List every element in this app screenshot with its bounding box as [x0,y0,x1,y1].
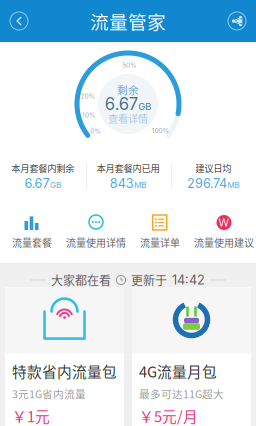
staticText: 296.74 [187,176,227,191]
staticText: ￥1元 [12,405,50,426]
staticText: 流量管家 [90,7,166,34]
staticText: 843 [110,176,134,191]
staticText: 本月套餐内剩余 [11,161,74,175]
staticText: 查看详情 [108,111,148,126]
button[interactable]: 4G流量月包 [132,287,251,426]
staticText: 最多可达11G超大 [139,386,224,401]
staticText: MB [228,180,240,190]
staticText: 3元1G省内流量 [12,386,86,401]
staticText: 更新于 [131,271,167,289]
staticText: MB [134,180,146,190]
staticText: 流量使用详情 [66,235,126,250]
staticText: GB [50,180,61,190]
staticText: W [218,216,229,229]
staticText: 流量使用建议 [194,235,254,250]
staticText: 剩余 [117,82,139,97]
button[interactable]: 流量使用详情 [64,211,128,251]
staticText: 0% [90,127,101,135]
staticText: 大家都在看 [51,271,111,289]
staticText: 6.67 [24,176,49,191]
button[interactable]: 流量套餐 [0,211,64,251]
staticText: 20% [80,92,95,100]
staticText: 建议日均 [195,161,231,175]
staticText: ￥5元/月 [139,405,198,426]
staticText: GB [138,101,151,112]
staticText: 6.67 [105,94,138,114]
staticText: 特款省内流量包 [12,360,117,382]
staticText: 10% [82,111,96,119]
button[interactable]: Share [218,0,256,42]
button[interactable]: 剩余 [98,82,158,123]
button[interactable]: 特款省内流量包 [5,287,124,426]
staticText: 流量详单 [140,235,180,250]
staticText: 100% [151,126,169,135]
staticText: 流量套餐 [12,235,52,250]
staticText: 4G流量月包 [139,360,217,382]
staticText: 本月套餐内已用 [96,161,159,175]
button[interactable]: Back [0,0,38,42]
staticText: 50% [122,61,137,69]
button[interactable]: W [192,211,256,251]
staticText: 14:42 [172,272,205,288]
button[interactable]: 流量详单 [128,211,192,251]
